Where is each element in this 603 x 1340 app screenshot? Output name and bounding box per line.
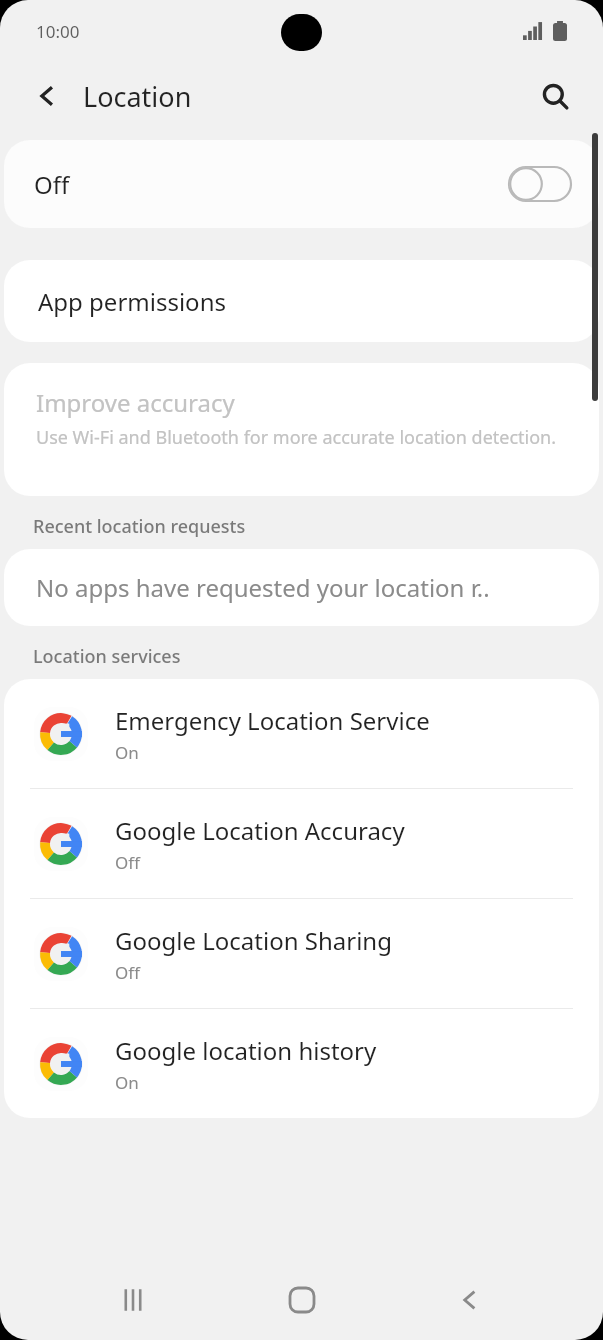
button[interactable]: Back: [435, 1265, 505, 1335]
button[interactable]: Google Location Sharing: [4, 899, 599, 1008]
staticText: On: [115, 741, 139, 764]
staticText: Recent location requests: [33, 514, 246, 539]
button[interactable]: Recents: [98, 1265, 168, 1335]
staticText: On: [115, 1071, 139, 1094]
button[interactable]: Improve accuracy: [4, 363, 599, 496]
staticText: Google Location Accuracy: [115, 814, 405, 847]
staticText: Emergency Location Service: [115, 704, 430, 737]
staticText: 10:00: [36, 20, 80, 43]
button[interactable]: Google Location Accuracy: [4, 789, 599, 898]
staticText: Off: [34, 168, 70, 201]
button[interactable]: Google location history: [4, 1009, 599, 1118]
button[interactable]: Off: [4, 140, 599, 228]
staticText: Use Wi-Fi and Bluetooth for more accurat…: [36, 425, 557, 450]
staticText: Google location history: [115, 1034, 377, 1067]
button[interactable]: Emergency Location Service: [4, 679, 599, 788]
staticText: Off: [115, 961, 140, 984]
button[interactable]: Home: [267, 1265, 337, 1335]
staticText: Improve accuracy: [36, 386, 235, 419]
staticText: Google Location Sharing: [115, 924, 392, 957]
button[interactable]: Back: [22, 70, 74, 122]
staticText: App permissions: [38, 285, 226, 318]
button[interactable]: App permissions: [4, 260, 599, 342]
staticText: Location services: [33, 644, 181, 669]
staticText: Off: [115, 851, 140, 874]
button[interactable]: Search: [529, 70, 581, 122]
staticText: Location: [83, 78, 192, 115]
button[interactable]: No apps have requested your location r..: [4, 549, 599, 626]
staticText: No apps have requested your location r..: [36, 571, 490, 604]
